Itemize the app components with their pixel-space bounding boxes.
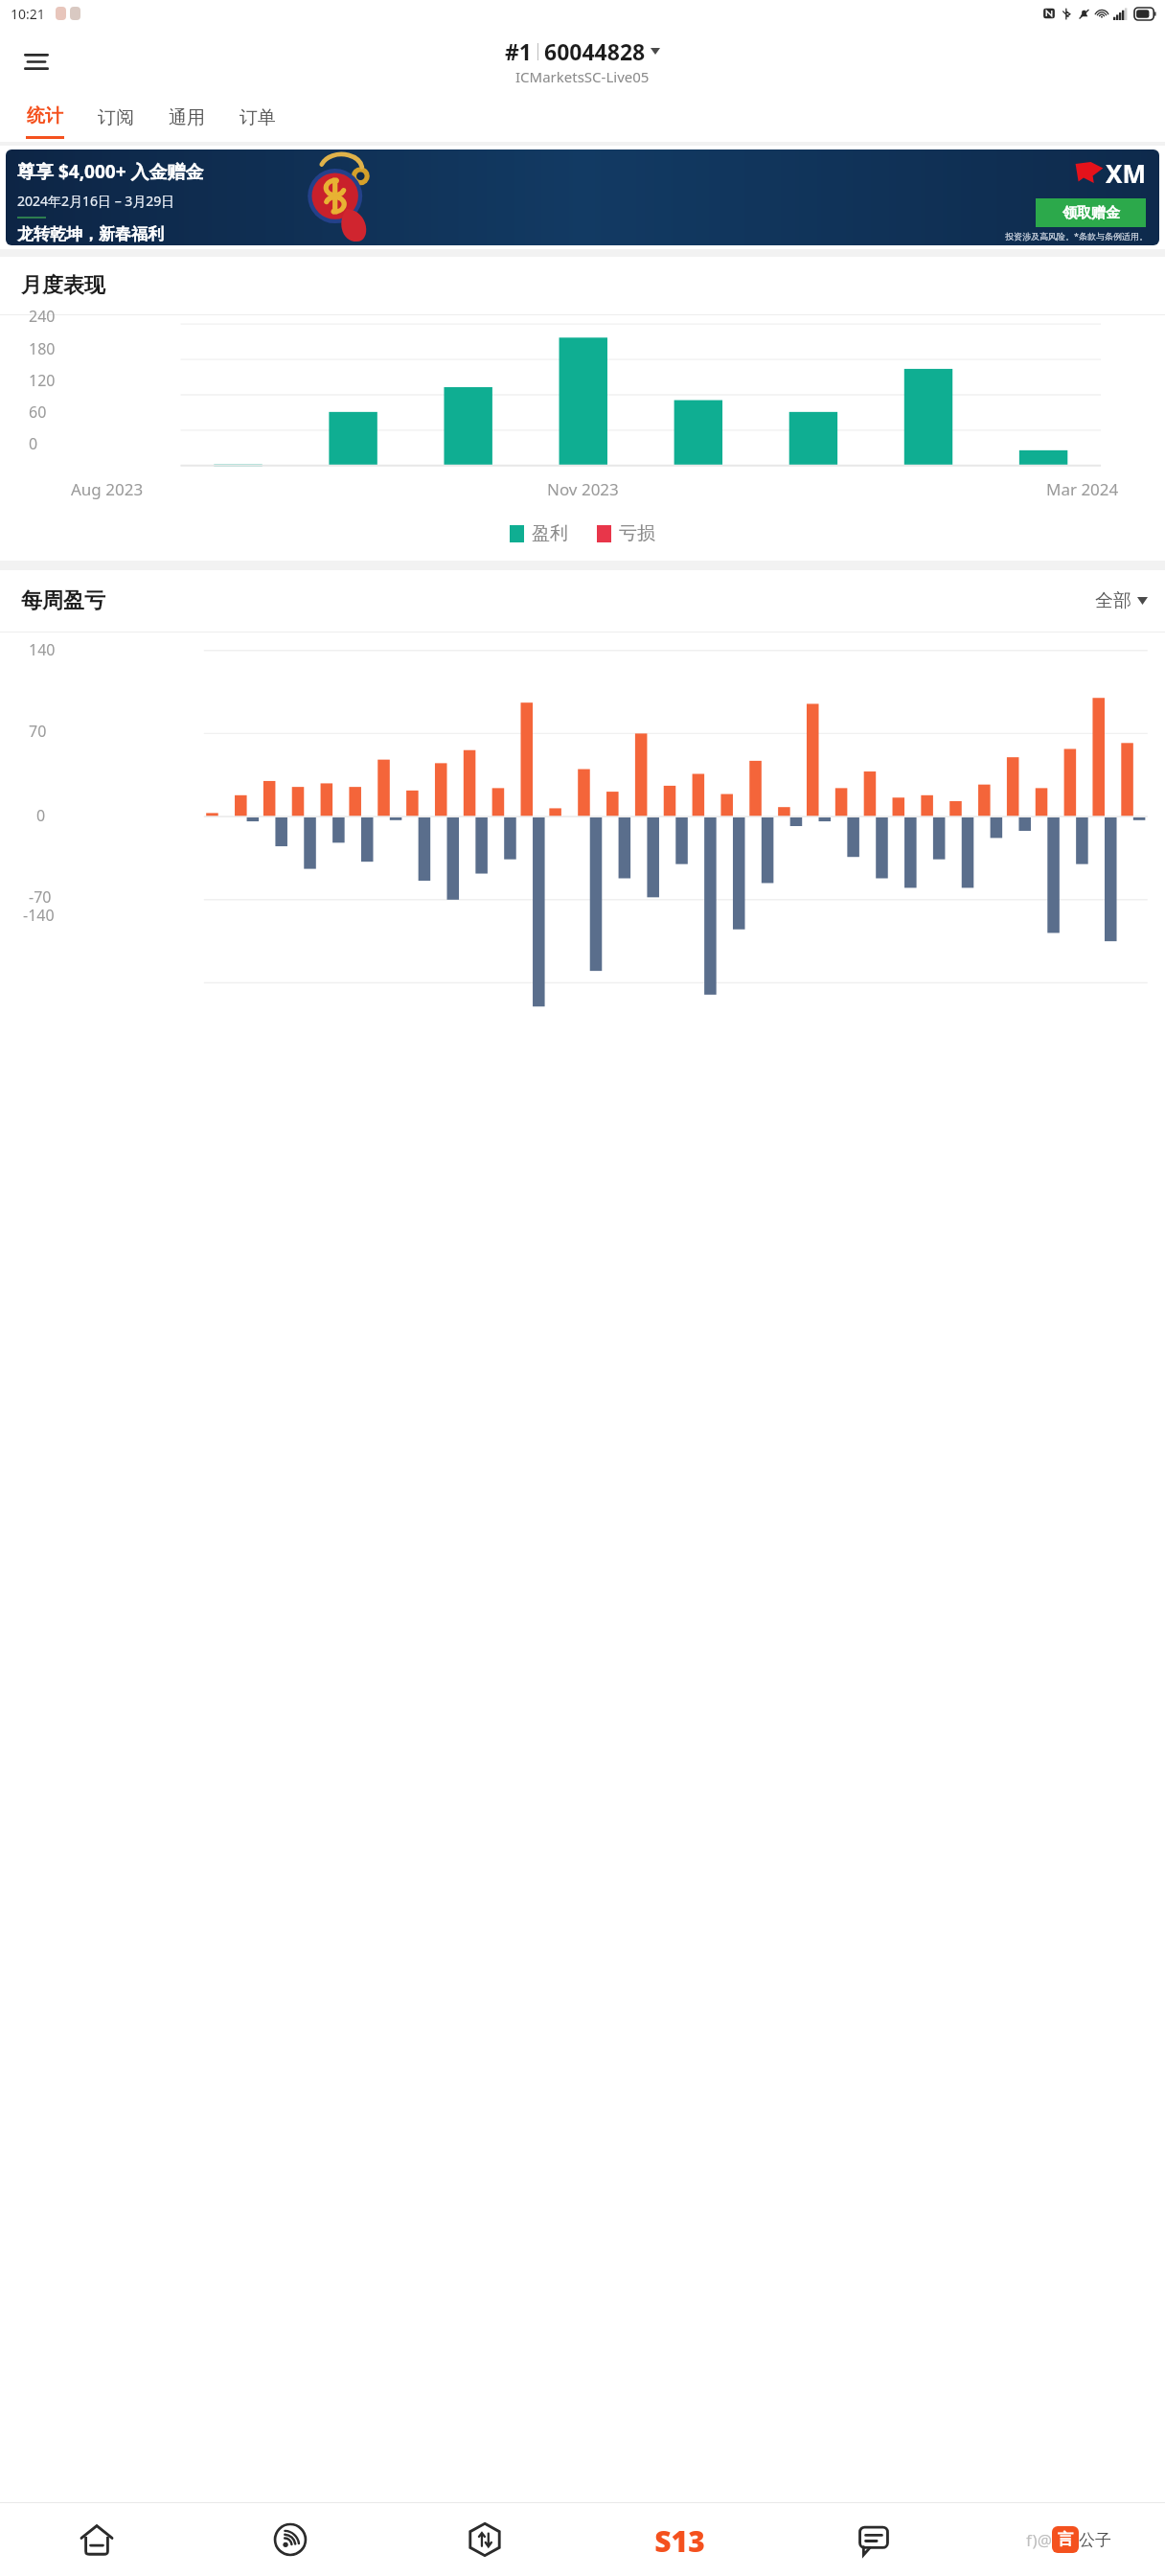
- staticText: 公子: [1079, 2530, 1111, 2550]
- button[interactable]: Trade: [387, 2503, 582, 2576]
- staticText: 通用: [169, 106, 205, 129]
- button[interactable]: 全部: [1095, 589, 1148, 612]
- staticText: 统计: [27, 104, 63, 127]
- button[interactable]: Messages: [776, 2503, 971, 2576]
- staticText: 0: [36, 805, 46, 826]
- staticText: 言: [1058, 2530, 1073, 2549]
- staticText: f)@: [1026, 2529, 1052, 2551]
- staticText: 盈利: [532, 522, 568, 545]
- staticText: 2024年2月16日 – 3月29日: [17, 192, 175, 210]
- staticText: Mar 2024: [1046, 478, 1119, 500]
- staticText: 70: [29, 721, 47, 742]
- staticText: 投资涉及高风险。*条款与条例适用。: [1005, 230, 1148, 241]
- staticText: 龙转乾坤，新春福利: [17, 224, 164, 244]
- button[interactable]: Menu: [13, 38, 59, 84]
- staticText: S13: [654, 2521, 705, 2558]
- staticText: 60: [29, 402, 47, 423]
- staticText: 140: [29, 639, 56, 660]
- button[interactable]: Profile: [971, 2503, 1165, 2576]
- button[interactable]: Home: [0, 2503, 194, 2576]
- staticText: Aug 2023: [71, 478, 144, 500]
- staticText: -140: [23, 905, 55, 926]
- staticText: 订阅: [98, 106, 134, 129]
- staticText: 领取赠金: [1062, 204, 1120, 222]
- staticText: 每周盈亏: [21, 587, 105, 614]
- staticText: -70: [29, 886, 52, 908]
- button[interactable]: 领取赠金: [1036, 198, 1146, 227]
- button[interactable]: #1: [505, 36, 660, 86]
- staticText: 0: [29, 433, 38, 454]
- staticText: XM: [1106, 156, 1146, 190]
- button[interactable]: 订单: [222, 96, 293, 142]
- staticText: 10:21: [11, 5, 45, 23]
- button[interactable]: 尊享 $4,000+ 入金赠金: [6, 149, 1159, 245]
- staticText: 120: [29, 370, 56, 391]
- button[interactable]: 统计: [10, 96, 80, 142]
- button[interactable]: Signals: [194, 2503, 387, 2576]
- button[interactable]: S13: [582, 2503, 776, 2576]
- button[interactable]: 订阅: [80, 96, 151, 142]
- staticText: 60044828: [544, 36, 646, 66]
- staticText: ICMarketsSC-Live05: [515, 67, 650, 86]
- button[interactable]: 通用: [151, 96, 222, 142]
- staticText: Nov 2023: [547, 478, 619, 500]
- staticText: #1: [505, 36, 533, 66]
- staticText: 240: [29, 306, 56, 327]
- staticText: 亏损: [619, 522, 655, 545]
- staticText: 月度表现: [21, 272, 105, 299]
- staticText: 全部: [1095, 589, 1131, 612]
- staticText: 订单: [240, 106, 276, 129]
- staticText: 180: [29, 338, 56, 359]
- staticText: 尊享 $4,000+ 入金赠金: [17, 159, 204, 184]
